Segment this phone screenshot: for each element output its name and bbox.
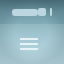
- button[interactable]: Menu: [12, 27, 46, 61]
